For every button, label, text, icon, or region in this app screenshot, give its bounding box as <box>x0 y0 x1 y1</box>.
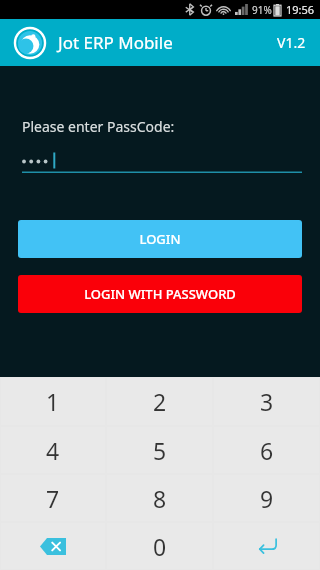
staticText: 91% <box>252 3 272 17</box>
button[interactable]: 4 <box>1 427 105 473</box>
button[interactable]: LOGIN WITH PASSWORD <box>18 275 302 313</box>
staticText: 1 <box>46 386 60 417</box>
button[interactable]: 2 <box>107 378 212 425</box>
staticText: 3 <box>260 386 274 417</box>
staticText: Jot ERP Mobile <box>58 31 173 54</box>
staticText: 19:56 <box>286 2 315 17</box>
staticText: 4 <box>46 435 60 466</box>
button[interactable]: 7 <box>1 475 105 521</box>
staticText: 0 <box>153 531 167 562</box>
button[interactable]: 6 <box>214 427 319 473</box>
button[interactable] <box>22 149 302 173</box>
staticText: 5 <box>153 435 167 466</box>
button[interactable]: 9 <box>214 475 319 521</box>
button[interactable]: 5 <box>107 427 212 473</box>
staticText: LOGIN <box>139 230 181 248</box>
button[interactable]: 3 <box>214 378 319 425</box>
staticText: 2 <box>153 386 167 417</box>
staticText: LOGIN WITH PASSWORD <box>84 285 236 303</box>
staticText: V1.2 <box>277 33 306 52</box>
button[interactable]: 1 <box>1 378 105 425</box>
staticText: 9 <box>260 483 274 514</box>
button[interactable]: 8 <box>107 475 212 521</box>
button[interactable]: LOGIN <box>18 220 302 258</box>
button[interactable]: Enter <box>214 523 319 569</box>
staticText: 6 <box>260 435 274 466</box>
staticText: 7 <box>46 483 60 514</box>
button[interactable]: Backspace <box>1 523 105 569</box>
button[interactable]: 0 <box>107 523 212 569</box>
staticText: Please enter PassCode: <box>22 117 175 136</box>
staticText: 8 <box>153 483 167 514</box>
